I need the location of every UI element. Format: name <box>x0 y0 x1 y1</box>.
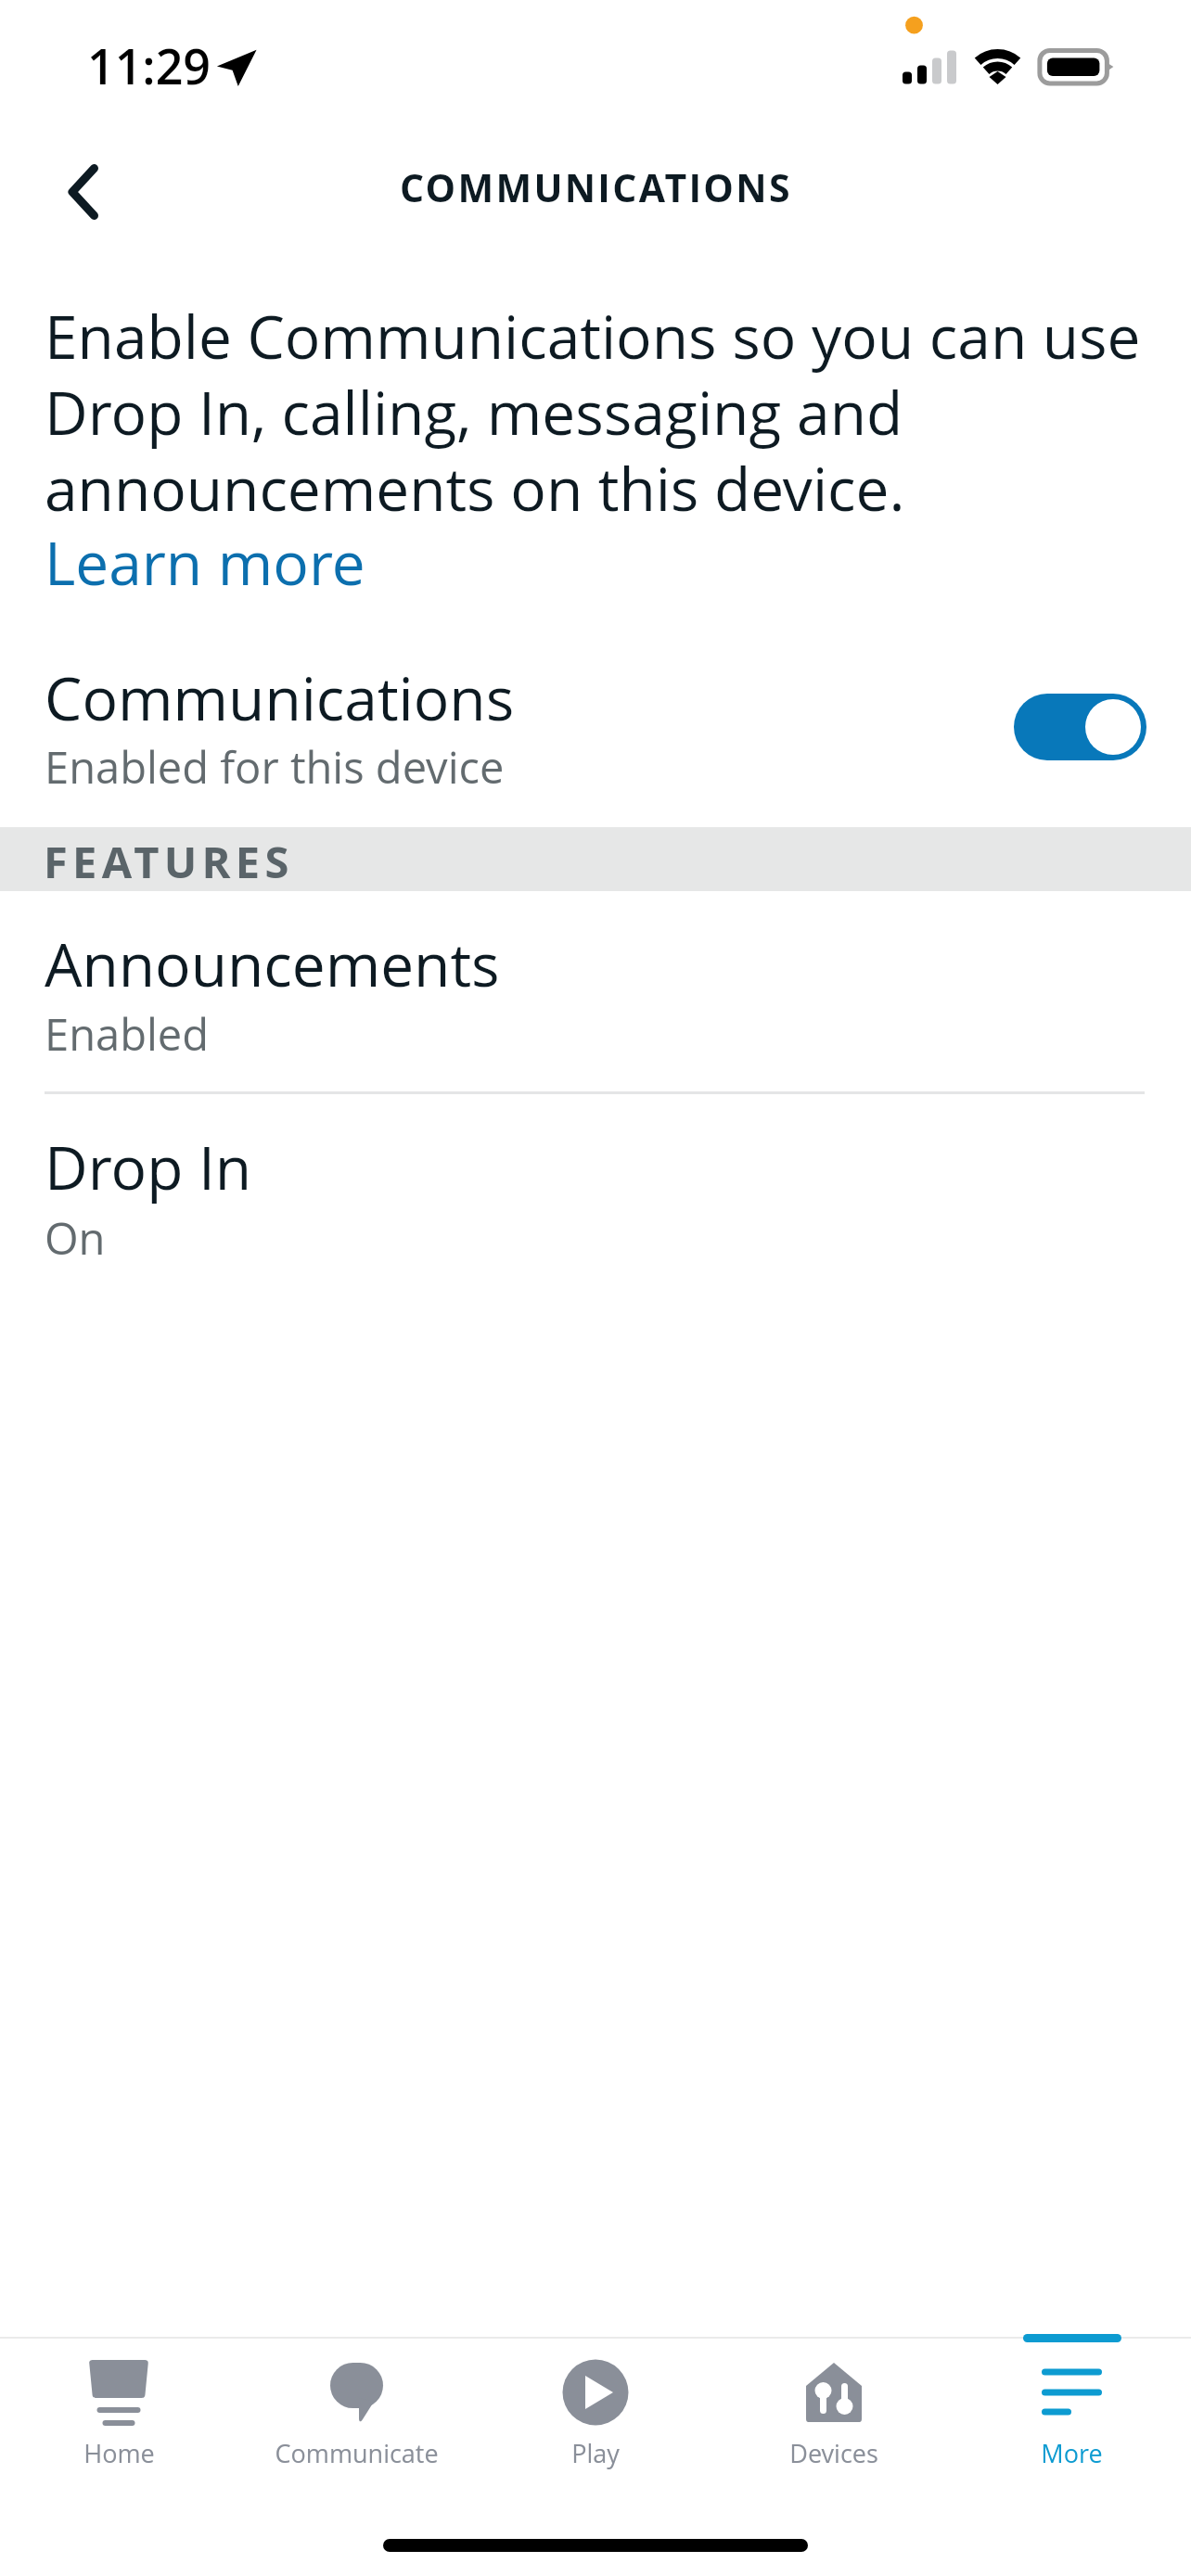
staticText: 11:29 <box>87 32 211 98</box>
button[interactable]: Communications <box>0 623 1191 827</box>
staticText: Play <box>571 2436 620 2470</box>
button[interactable]: Back <box>22 132 143 252</box>
staticText: Enabled for this device <box>45 737 505 797</box>
button[interactable]: Announcements <box>0 891 1191 1092</box>
button[interactable]: More <box>953 2339 1191 2478</box>
staticText: Drop In <box>45 1127 252 1207</box>
staticText: FEATURES <box>44 832 294 891</box>
staticText: Devices <box>789 2436 878 2470</box>
staticText: Enabled <box>45 1004 209 1064</box>
button[interactable]: Devices <box>714 2339 953 2478</box>
button[interactable]: Learn more <box>45 515 365 598</box>
staticText: Enable Communications so you can use Dro… <box>45 296 1148 529</box>
button[interactable]: Communicate <box>237 2339 476 2478</box>
staticText: Home <box>83 2436 155 2470</box>
staticText: Communicate <box>275 2436 439 2470</box>
staticText: Learn more <box>45 522 365 603</box>
staticText: On <box>45 1208 106 1268</box>
staticText: Announcements <box>45 924 500 1004</box>
button[interactable]: Play <box>476 2339 714 2478</box>
button[interactable]: Drop In <box>0 1094 1191 1295</box>
staticText: COMMUNICATIONS <box>400 161 792 213</box>
staticText: Communications <box>45 657 515 738</box>
staticText: More <box>1041 2436 1103 2470</box>
button[interactable]: Communications enabled toggle <box>1014 694 1146 760</box>
button[interactable]: Home <box>0 2339 237 2478</box>
